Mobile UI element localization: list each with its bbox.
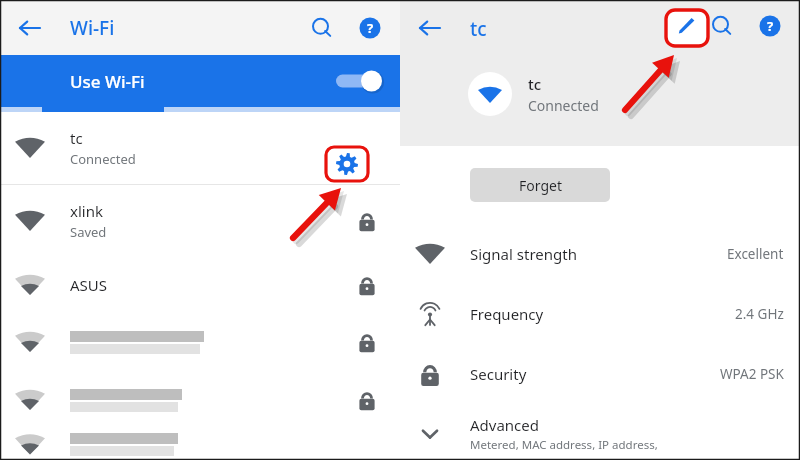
staticText: Connected <box>70 150 136 168</box>
staticText: ASUS <box>70 275 108 295</box>
staticText: Advanced <box>470 415 540 435</box>
button[interactable]: tc <box>0 112 400 184</box>
staticText: WPA2 PSK <box>720 365 784 383</box>
button[interactable]: Frequency <box>400 288 800 340</box>
staticText: tc <box>528 74 542 94</box>
button[interactable]: Back <box>406 4 454 52</box>
staticText: Metered, MAC address, IP address, Gatewa… <box>470 437 690 453</box>
button[interactable]: Help <box>748 4 792 48</box>
staticText: Frequency <box>470 304 544 324</box>
button[interactable]: Security <box>400 348 800 400</box>
staticText: tc <box>70 128 83 148</box>
button[interactable]: Edit <box>664 5 710 51</box>
staticText: Signal strength <box>470 244 577 264</box>
staticText: Excellent <box>727 245 784 263</box>
button[interactable]: Back <box>6 4 54 52</box>
button[interactable] <box>0 313 400 371</box>
staticText: Saved <box>70 223 107 241</box>
staticText: Connected <box>528 96 599 115</box>
button[interactable]: Signal strength <box>400 228 800 280</box>
staticText: ? <box>367 19 374 37</box>
staticText: Security <box>470 364 527 384</box>
button[interactable]: Search <box>700 4 744 48</box>
button[interactable]: Help <box>348 6 392 50</box>
button[interactable]: Use Wi-Fi <box>0 55 400 107</box>
staticText: xlink <box>70 201 103 221</box>
staticText: Wi-Fi <box>70 15 115 41</box>
button[interactable]: xlink <box>0 185 400 257</box>
staticText: tc <box>470 16 487 42</box>
button[interactable]: Search <box>300 6 344 50</box>
staticText: Forget <box>519 176 562 195</box>
button[interactable] <box>0 429 400 460</box>
button[interactable]: Advanced <box>400 408 800 460</box>
staticText: Use Wi-Fi <box>70 70 145 93</box>
button[interactable]: ASUS <box>0 257 400 313</box>
button[interactable]: Forget <box>470 168 610 202</box>
staticText: ? <box>767 17 774 35</box>
button[interactable] <box>0 371 400 429</box>
staticText: 2.4 GHz <box>735 305 784 323</box>
